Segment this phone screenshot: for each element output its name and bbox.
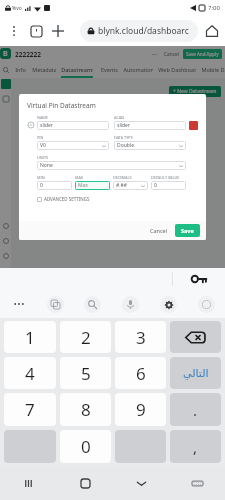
button[interactable]: V0 — [37, 141, 109, 150]
button[interactable]: 4 — [4, 357, 56, 389]
staticText: 0 — [81, 435, 91, 458]
staticText: B — [3, 49, 8, 59]
staticText: Events — [101, 66, 118, 73]
staticText: . — [193, 400, 198, 420]
button[interactable]: ADVANCED SETTINGS — [37, 196, 90, 202]
staticText: Save And Apply — [186, 51, 219, 57]
staticText: + New Datastream — [173, 88, 217, 95]
button[interactable]: Save And Apply — [183, 49, 222, 59]
button[interactable]: New tab — [47, 20, 69, 42]
staticText: Metadata — [32, 66, 56, 73]
button[interactable]: Next — [170, 357, 221, 389]
button[interactable]: More options — [3, 20, 25, 42]
staticText: MIN — [37, 175, 45, 180]
button[interactable]: Info — [15, 60, 26, 78]
staticText: Cancel — [164, 51, 179, 58]
staticText: slider — [117, 122, 130, 129]
staticText: ADVANCED SETTINGS — [44, 196, 90, 202]
button[interactable]: Close keyboard — [113, 466, 169, 500]
staticText: Double — [117, 142, 134, 149]
button[interactable]: Tabs — [25, 20, 47, 42]
button[interactable]: 1 — [4, 321, 56, 353]
staticText: 8 — [81, 398, 91, 421]
staticText: — — [152, 51, 158, 58]
staticText: التالي — [183, 367, 209, 380]
button[interactable]: Search — [74, 290, 111, 318]
staticText: Virtual Pin Datastream — [27, 101, 96, 110]
button[interactable]: 3 — [115, 321, 166, 353]
button[interactable]: Save — [175, 224, 200, 237]
staticText: %vo — [12, 5, 22, 12]
staticText: 3 — [136, 326, 146, 349]
button[interactable]: Cancel — [147, 225, 171, 236]
button[interactable]: Datastreams — [61, 60, 93, 78]
staticText: DECIMALS — [113, 175, 132, 180]
staticText: DEFAULT VALUE — [151, 175, 180, 180]
button[interactable]: Emoji — [187, 290, 225, 318]
button[interactable]: blynk.cloud/dashboarc — [80, 20, 198, 42]
staticText: ALIAS — [114, 115, 125, 120]
staticText: 0 — [40, 182, 43, 189]
staticText: Datastreams — [61, 66, 93, 73]
button[interactable]: slider — [37, 121, 109, 130]
button[interactable]: 2 — [60, 321, 111, 353]
staticText: None — [40, 162, 53, 169]
button[interactable]: Password autofill — [173, 268, 225, 290]
staticText: 1 — [25, 326, 35, 349]
staticText: 2222222 — [15, 50, 42, 59]
staticText: Info — [15, 66, 26, 73]
staticText: #.## — [116, 182, 128, 189]
staticText: 4 — [25, 362, 35, 385]
button[interactable]: 6 — [115, 357, 166, 389]
button[interactable]: Delete — [170, 321, 221, 353]
button[interactable]: Events — [100, 60, 118, 78]
button[interactable]: 0 — [151, 181, 186, 190]
button[interactable]: 7 — [4, 393, 56, 426]
staticText: blynk.cloud/dashboarc — [98, 25, 189, 37]
button[interactable]: 0 — [60, 430, 111, 463]
staticText: PIN — [37, 135, 44, 140]
button[interactable]: Web Dashboard — [158, 60, 196, 78]
staticText: 7:00 — [208, 4, 220, 12]
button[interactable]: slider — [114, 121, 186, 130]
button[interactable]: Color — [189, 121, 198, 130]
staticText: 7 — [25, 398, 35, 421]
staticText: Automations — [123, 66, 153, 73]
staticText: 0 — [154, 182, 157, 189]
button[interactable]: Mobile Da — [201, 60, 225, 78]
button[interactable]: . — [170, 393, 221, 426]
staticText: 5 — [81, 362, 91, 385]
button[interactable]: Home — [201, 20, 223, 42]
staticText: 2 — [81, 326, 91, 349]
button[interactable]: Stickers — [37, 290, 74, 318]
button[interactable]: #.## — [113, 181, 148, 190]
button[interactable]: 9 — [115, 393, 166, 426]
button[interactable]: 8 — [60, 393, 111, 426]
staticText: V0 — [40, 142, 46, 149]
staticText: Cancel — [150, 227, 168, 234]
button[interactable]: Switch keyboard — [169, 466, 225, 500]
button[interactable]: 5 — [60, 357, 111, 389]
staticText: Web Dashboard — [158, 66, 196, 73]
button[interactable]: Home — [57, 466, 113, 500]
button[interactable]: 0 — [37, 181, 72, 190]
button[interactable]: Recents — [0, 466, 57, 500]
button[interactable]: Settings — [149, 290, 187, 318]
button[interactable]: Metadata — [32, 60, 56, 78]
button[interactable]: None — [37, 161, 186, 170]
staticText: UNITS — [37, 155, 49, 160]
staticText: NAME — [37, 115, 48, 120]
button[interactable]: , — [170, 430, 221, 463]
button[interactable]: Voice input — [111, 290, 149, 318]
staticText: MAX — [75, 175, 84, 180]
button[interactable]: More — [0, 290, 37, 318]
staticText: Save — [181, 227, 194, 234]
button[interactable]: Max — [75, 181, 110, 190]
staticText: Max — [78, 182, 88, 189]
button[interactable]: Automations — [123, 60, 153, 78]
staticText: Mobile Da — [201, 66, 225, 73]
button[interactable]: Double — [114, 141, 186, 150]
staticText: , — [193, 437, 198, 457]
